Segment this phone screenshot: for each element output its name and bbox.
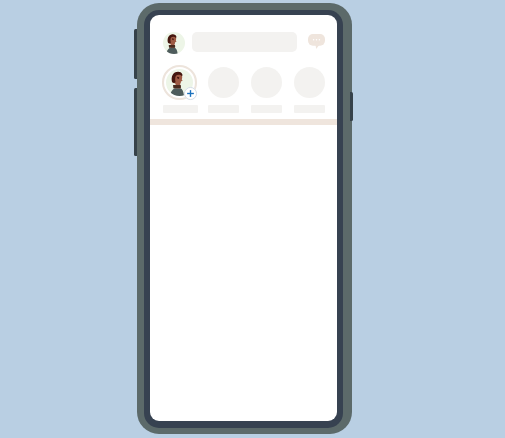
button[interactable]: Add to your story <box>162 65 197 100</box>
button[interactable]: Messages <box>308 34 325 49</box>
button[interactable]: Profile <box>163 32 185 54</box>
button[interactable]: Story <box>208 67 239 98</box>
button[interactable]: Story <box>251 67 282 98</box>
button[interactable]: Story <box>294 67 325 98</box>
